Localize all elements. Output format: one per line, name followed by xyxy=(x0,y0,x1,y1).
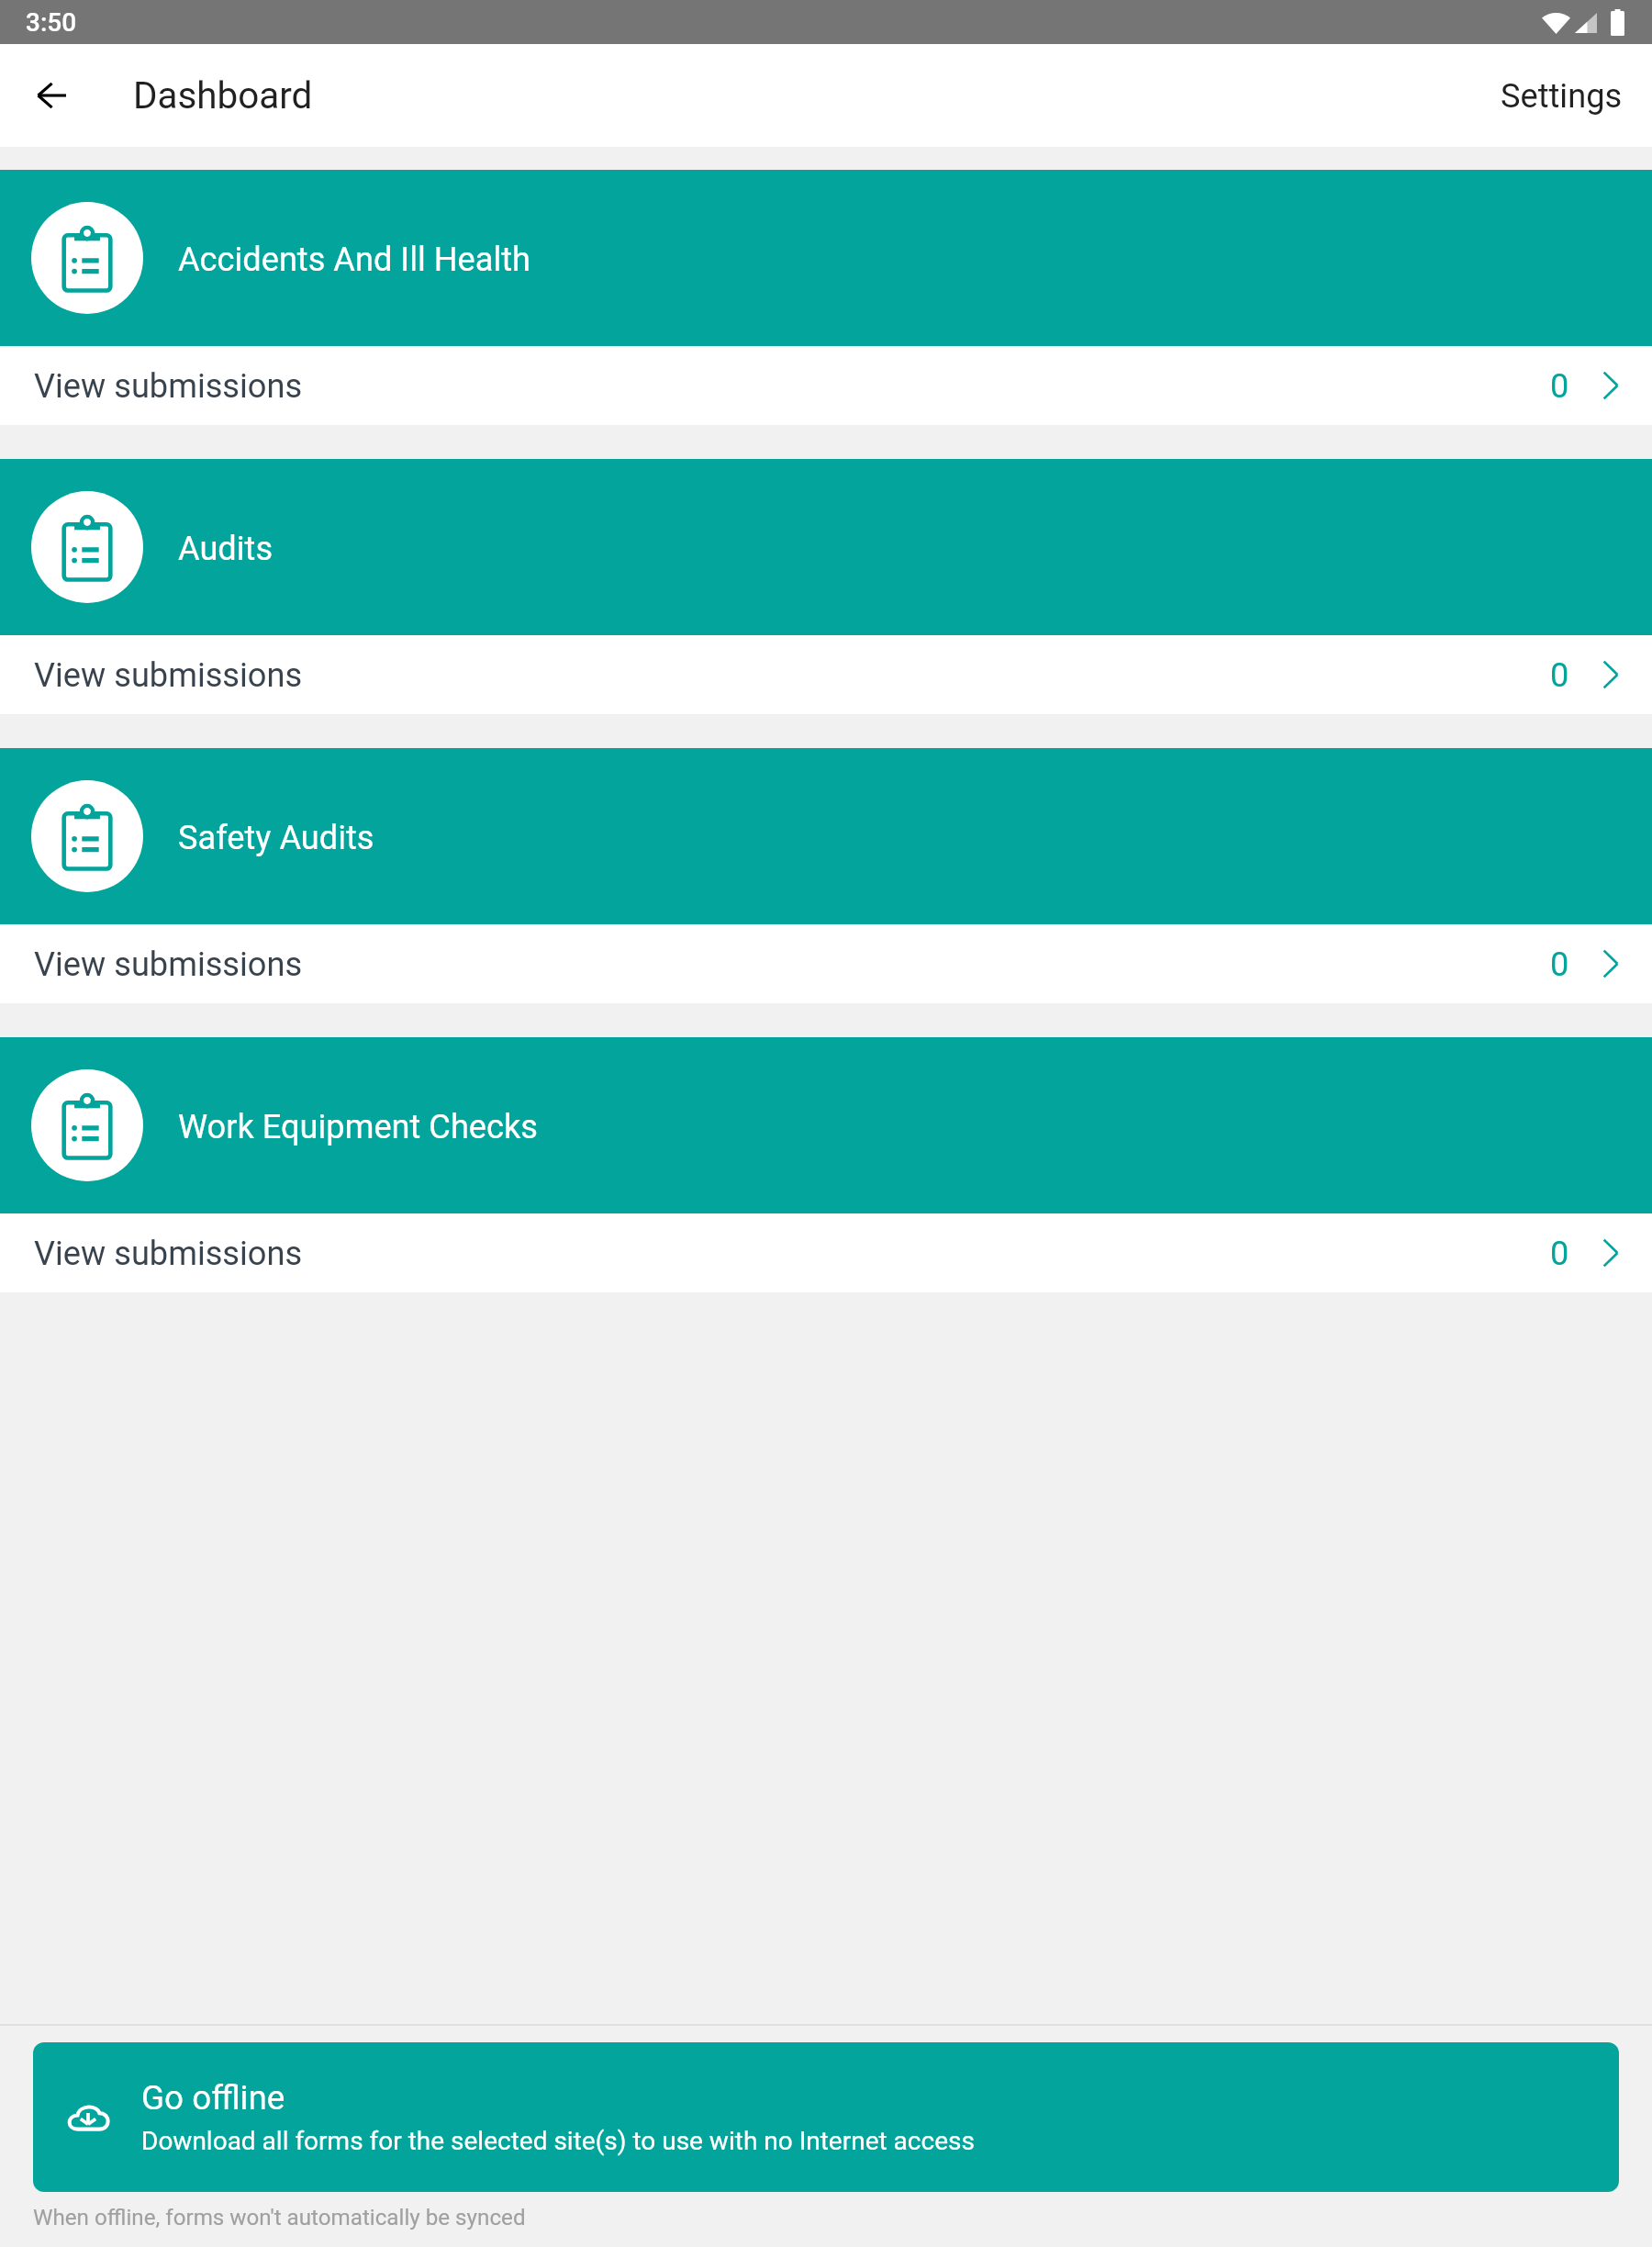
staticText: View submissions xyxy=(34,1234,303,1272)
staticText: Go offline xyxy=(141,2078,285,2118)
staticText: Settings xyxy=(1501,76,1623,115)
staticText: 0 xyxy=(1550,655,1569,694)
button[interactable]: Accidents And Ill Health xyxy=(0,170,1652,346)
staticText: View submissions xyxy=(34,655,303,694)
staticText: 0 xyxy=(1550,945,1569,983)
staticText: 3:50 xyxy=(26,7,77,38)
staticText: When offline, forms won't automatically … xyxy=(33,2205,526,2230)
button[interactable]: Back xyxy=(7,51,95,140)
button[interactable]: Safety Audits xyxy=(0,748,1652,924)
staticText: Accidents And Ill Health xyxy=(178,240,531,278)
staticText: View submissions xyxy=(34,366,303,405)
staticText: 0 xyxy=(1550,1234,1569,1272)
staticText: 0 xyxy=(1550,366,1569,405)
button[interactable]: View submissions xyxy=(0,1213,1652,1292)
staticText: Work Equipment Checks xyxy=(178,1107,539,1146)
staticText: View submissions xyxy=(34,945,303,983)
staticText: Dashboard xyxy=(133,74,313,117)
staticText: Audits xyxy=(178,529,273,567)
button[interactable]: Work Equipment Checks xyxy=(0,1037,1652,1213)
button[interactable]: Settings xyxy=(1471,54,1652,137)
staticText: Safety Audits xyxy=(178,818,374,856)
staticText: Download all forms for the selected site… xyxy=(141,2126,975,2156)
button[interactable]: View submissions xyxy=(0,635,1652,714)
button[interactable]: Go offline xyxy=(33,2042,1619,2192)
button[interactable]: View submissions xyxy=(0,924,1652,1003)
button[interactable]: Audits xyxy=(0,459,1652,635)
button[interactable]: View submissions xyxy=(0,346,1652,425)
